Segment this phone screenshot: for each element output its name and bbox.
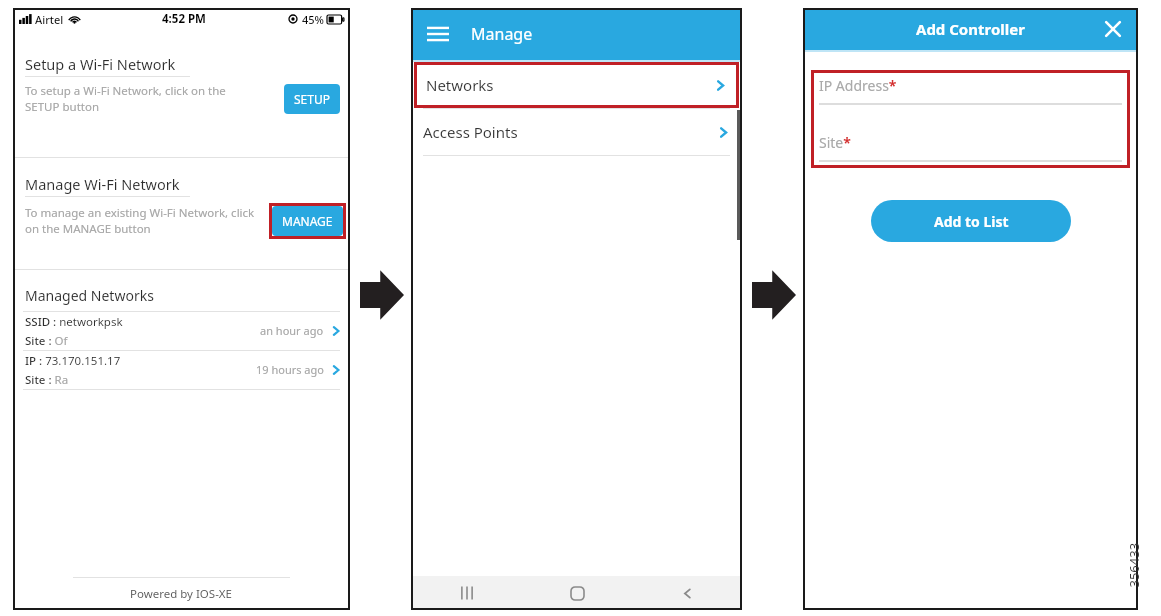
button[interactable]: SETUP bbox=[284, 84, 340, 114]
staticText: an hour ago bbox=[260, 323, 324, 338]
button[interactable]: IP : 73.170.151.17 bbox=[13, 351, 350, 389]
staticText: Powered by IOS-XE bbox=[130, 586, 233, 602]
staticText: SETUP bbox=[294, 91, 330, 107]
staticText: Manage bbox=[471, 23, 533, 45]
staticText: 4:52 PM bbox=[162, 11, 206, 27]
staticText: SETUP button bbox=[25, 99, 100, 115]
button[interactable]: Access Points bbox=[411, 109, 742, 155]
staticText: Access Points bbox=[423, 122, 518, 142]
button[interactable]: Add to List bbox=[871, 200, 1071, 242]
staticText: Site : Of bbox=[25, 333, 68, 349]
button[interactable]: Networks bbox=[414, 62, 739, 108]
button[interactable]: Site* bbox=[819, 133, 1122, 162]
staticText: IP : 73.170.151.17 bbox=[25, 353, 121, 369]
staticText: IP Address* bbox=[819, 76, 897, 95]
button[interactable]: Open navigation menu bbox=[425, 21, 451, 47]
staticText: Networks bbox=[426, 75, 494, 95]
staticText: Setup a Wi-Fi Network bbox=[25, 54, 176, 74]
button[interactable]: Back bbox=[632, 576, 742, 610]
staticText: Add to List bbox=[934, 212, 1009, 231]
staticText: 356433 bbox=[1124, 542, 1142, 587]
button[interactable]: Home bbox=[522, 576, 632, 610]
staticText: 19 hours ago bbox=[256, 362, 324, 377]
staticText: Airtel bbox=[35, 12, 64, 27]
button[interactable]: Recent apps bbox=[411, 576, 522, 610]
button[interactable]: Close bbox=[1100, 16, 1126, 42]
staticText: To manage an existing Wi-Fi Network, cli… bbox=[25, 205, 255, 221]
staticText: Managed Networks bbox=[25, 286, 154, 305]
staticText: MANAGE bbox=[282, 213, 333, 229]
staticText: Site* bbox=[819, 133, 851, 152]
button[interactable]: MANAGE bbox=[272, 206, 343, 236]
staticText: Add Controller bbox=[916, 19, 1025, 39]
button[interactable]: SSID : networkpsk bbox=[13, 312, 350, 350]
staticText: Site : Ra bbox=[25, 372, 69, 388]
staticText: Manage Wi-Fi Network bbox=[25, 174, 180, 194]
staticText: on the MANAGE button bbox=[25, 221, 151, 237]
staticText: To setup a Wi-Fi Network, click on the bbox=[25, 83, 226, 99]
staticText: SSID : networkpsk bbox=[25, 314, 123, 330]
staticText: 45% bbox=[302, 12, 324, 27]
button[interactable]: IP Address* bbox=[819, 76, 1122, 105]
